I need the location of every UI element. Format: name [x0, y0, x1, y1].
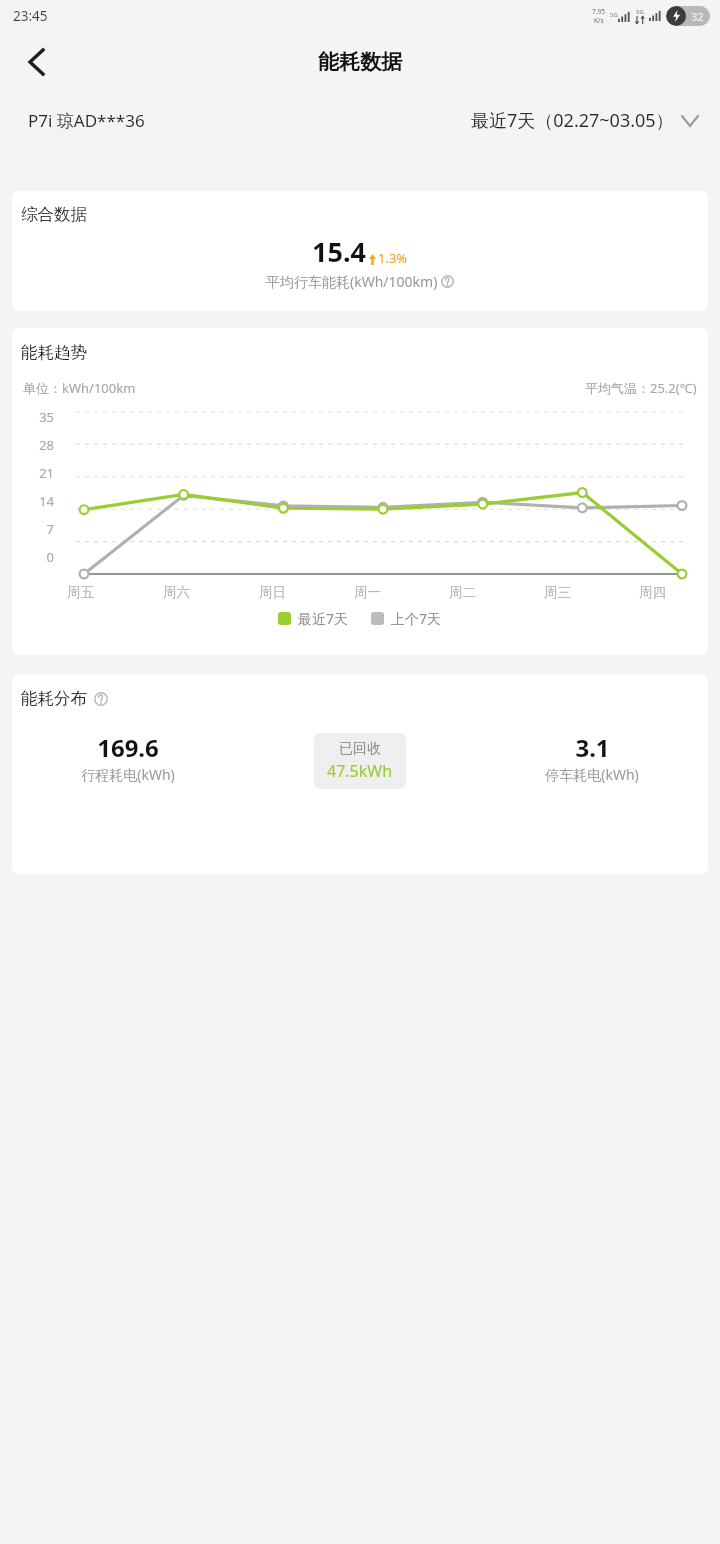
staticText: 最近7天（02.27~03.05）	[471, 108, 674, 133]
staticText: 周二	[449, 584, 476, 601]
staticText: 平均气温：25.2(℃)	[585, 379, 697, 397]
staticText: 能耗趋势	[21, 342, 87, 363]
staticText: 1.3%	[378, 249, 408, 267]
staticText: 14	[28, 492, 54, 510]
staticText: 5G	[636, 8, 644, 16]
staticText: 0	[28, 548, 54, 566]
staticText: 能耗分布	[21, 688, 87, 709]
staticText: 3.1	[575, 731, 610, 764]
staticText: 综合数据	[21, 204, 87, 225]
staticText: 上个7天	[391, 609, 442, 628]
staticText: 47.5kWh	[327, 760, 393, 782]
staticText: 单位：kWh/100km	[23, 379, 136, 397]
staticText: 能耗数据	[318, 49, 402, 75]
staticText: 周四	[639, 584, 666, 601]
staticText: 周日	[259, 584, 286, 601]
staticText: 已回收	[339, 740, 381, 758]
staticText: 周三	[544, 584, 571, 601]
button[interactable]: Back	[12, 38, 60, 86]
button[interactable]: 最近7天（02.27~03.05）	[471, 108, 720, 133]
staticText: K/s	[594, 16, 604, 25]
staticText: 5G	[610, 11, 618, 19]
staticText: 7	[28, 520, 54, 538]
staticText: 行程耗电(kWh)	[81, 765, 175, 784]
staticText: 23:45	[13, 7, 48, 25]
staticText: 15.4	[312, 233, 366, 270]
staticText: 169.6	[97, 731, 159, 764]
staticText: 周六	[163, 584, 190, 601]
staticText: 35	[28, 408, 54, 426]
staticText: 平均行车能耗(kWh/100km)	[266, 272, 438, 291]
staticText: 最近7天	[298, 609, 349, 628]
staticText: 32	[691, 9, 704, 24]
staticText: 28	[28, 436, 54, 454]
staticText: P7i 琼AD***36	[28, 109, 145, 132]
staticText: 周一	[354, 584, 381, 601]
staticText: 7.95	[592, 7, 605, 16]
staticText: 周五	[67, 584, 94, 601]
staticText: 21	[28, 464, 54, 482]
staticText: 停车耗电(kWh)	[545, 765, 639, 784]
